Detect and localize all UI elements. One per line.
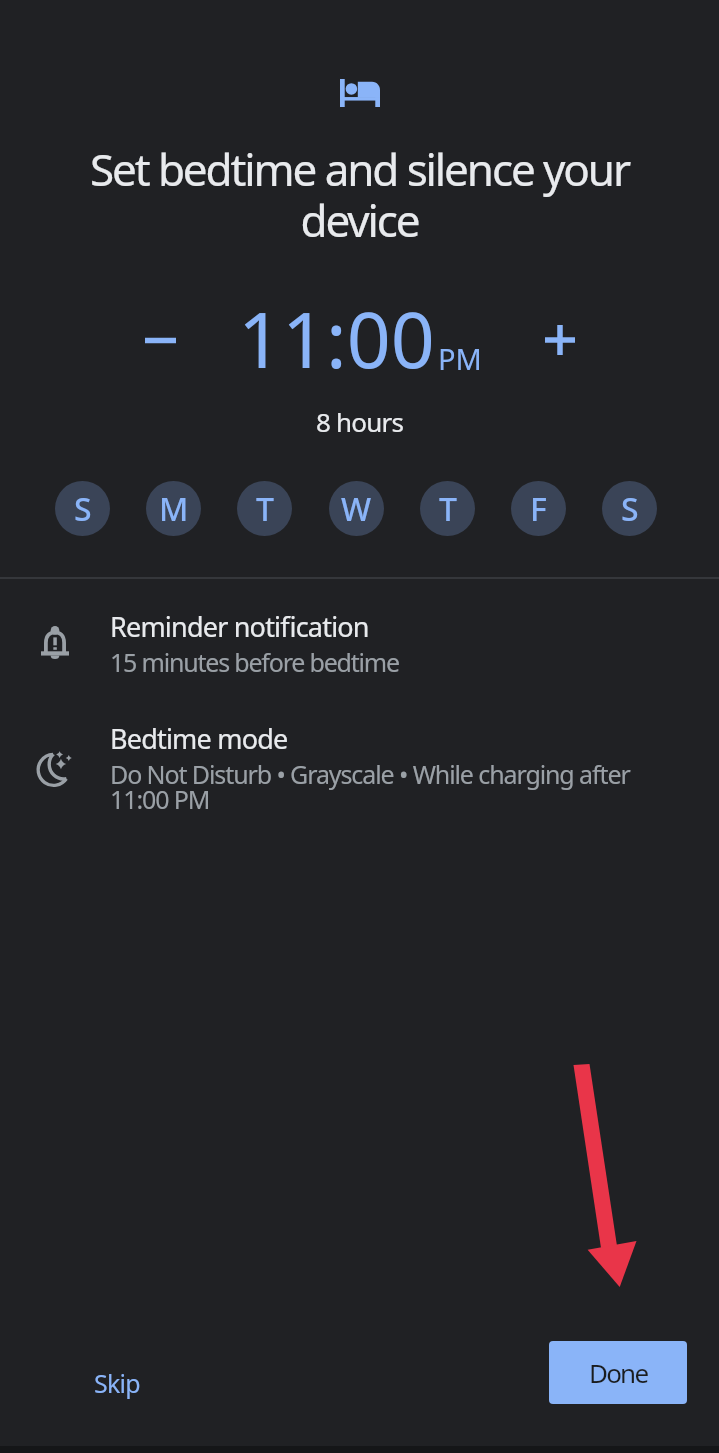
staticText: M bbox=[159, 487, 189, 531]
button[interactable]: S bbox=[55, 481, 110, 536]
button[interactable]: Skip bbox=[70, 1355, 164, 1411]
button[interactable]: T bbox=[237, 481, 292, 536]
staticText: Do Not Disturb • Grayscale • While charg… bbox=[110, 757, 641, 817]
button[interactable]: Done bbox=[549, 1341, 687, 1404]
staticText: 15 minutes before bedtime bbox=[110, 645, 399, 679]
button[interactable]: S bbox=[602, 481, 657, 536]
staticText: Reminder notification bbox=[110, 608, 369, 645]
staticText: W bbox=[341, 487, 372, 531]
staticText: 11:00 bbox=[238, 286, 435, 391]
button[interactable]: Bedtime mode bbox=[0, 708, 719, 832]
staticText: Bedtime mode bbox=[110, 720, 288, 757]
staticText: F bbox=[530, 487, 547, 531]
button[interactable]: Increase bedtime bbox=[524, 304, 596, 376]
staticText: S bbox=[621, 487, 639, 531]
staticText: S bbox=[74, 487, 92, 531]
button[interactable]: M bbox=[146, 481, 201, 536]
button[interactable]: W bbox=[329, 481, 384, 536]
button[interactable]: Reminder notification bbox=[0, 596, 719, 700]
staticText: 8 hours bbox=[0, 404, 719, 439]
staticText: PM bbox=[438, 339, 482, 378]
staticText: Set bedtime and silence your device bbox=[80, 139, 639, 250]
button[interactable]: F bbox=[511, 481, 566, 536]
staticText: T bbox=[439, 487, 457, 531]
staticText: Done bbox=[589, 1355, 648, 1390]
button[interactable]: T bbox=[420, 481, 475, 536]
button[interactable]: Decrease bedtime bbox=[124, 304, 196, 376]
staticText: T bbox=[256, 487, 274, 531]
staticText: Skip bbox=[94, 1366, 140, 1400]
